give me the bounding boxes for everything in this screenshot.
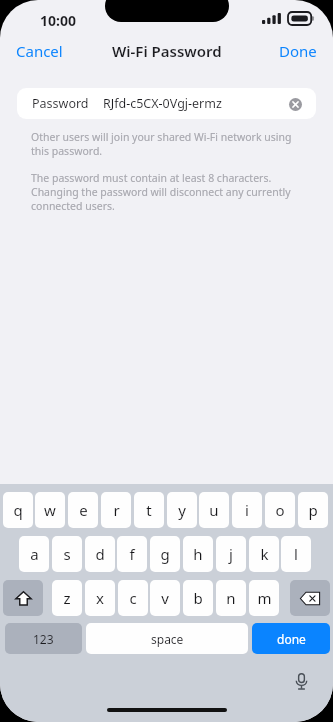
button[interactable]: n xyxy=(216,580,246,616)
staticText: 123 xyxy=(33,631,54,647)
button[interactable]: m xyxy=(249,580,279,616)
button[interactable]: Cancel xyxy=(8,36,71,66)
staticText: p xyxy=(308,500,318,520)
staticText: b xyxy=(193,588,203,608)
staticText: d xyxy=(95,544,105,564)
staticText: z xyxy=(63,588,71,608)
staticText: q xyxy=(13,500,23,520)
staticText: done xyxy=(277,631,306,647)
button[interactable]: a xyxy=(19,536,49,572)
staticText: l xyxy=(294,544,298,564)
staticText: j xyxy=(229,544,233,564)
staticText: s xyxy=(63,544,71,564)
staticText: a xyxy=(30,544,39,564)
button[interactable]: s xyxy=(52,536,82,572)
button[interactable]: Backspace xyxy=(290,580,330,616)
button[interactable]: p xyxy=(298,492,328,528)
button[interactable]: w xyxy=(35,492,65,528)
staticText: w xyxy=(44,500,56,520)
button[interactable]: Password xyxy=(17,88,316,119)
staticText: g xyxy=(160,544,170,564)
staticText: Wi-Fi Password xyxy=(112,41,222,61)
staticText: u xyxy=(209,500,219,520)
button[interactable]: i xyxy=(232,492,262,528)
staticText: c xyxy=(129,588,137,608)
staticText: r xyxy=(113,500,120,520)
staticText: x xyxy=(96,588,104,608)
button[interactable]: e xyxy=(68,492,98,528)
button[interactable]: v xyxy=(150,580,180,616)
button[interactable]: f xyxy=(117,536,147,572)
button[interactable]: Clear text xyxy=(282,91,308,117)
staticText: v xyxy=(161,588,169,608)
staticText: Cancel xyxy=(16,41,63,61)
staticText: The password must contain at least 8 cha… xyxy=(31,171,302,213)
button[interactable]: q xyxy=(3,492,33,528)
staticText: 10:00 xyxy=(40,11,76,30)
button[interactable]: done xyxy=(252,623,330,654)
button[interactable]: space xyxy=(86,623,248,654)
staticText: y xyxy=(178,500,186,520)
button[interactable]: z xyxy=(52,580,82,616)
button[interactable]: Dictation xyxy=(286,666,316,696)
button[interactable]: x xyxy=(85,580,115,616)
staticText: RJfd-c5CX-0Vgj-ermz xyxy=(103,95,222,112)
staticText: f xyxy=(129,544,135,564)
staticText: space xyxy=(151,631,184,647)
staticText: t xyxy=(146,500,152,520)
staticText: e xyxy=(79,500,88,520)
button[interactable]: j xyxy=(216,536,246,572)
button[interactable]: o xyxy=(265,492,295,528)
staticText: k xyxy=(260,544,269,564)
staticText: o xyxy=(275,500,285,520)
staticText: Other users will join your shared Wi-Fi … xyxy=(31,130,302,158)
staticText: i xyxy=(245,500,249,520)
button[interactable]: b xyxy=(183,580,213,616)
button[interactable]: r xyxy=(101,492,131,528)
button[interactable]: c xyxy=(118,580,148,616)
staticText: Done xyxy=(279,41,317,61)
button[interactable]: k xyxy=(249,536,279,572)
button[interactable]: Shift xyxy=(3,580,43,616)
button[interactable]: Done xyxy=(271,36,325,66)
button[interactable]: h xyxy=(183,536,213,572)
button[interactable]: u xyxy=(199,492,229,528)
staticText: Password xyxy=(32,95,89,112)
button[interactable]: 123 xyxy=(5,623,82,654)
staticText: m xyxy=(257,588,272,608)
button[interactable]: t xyxy=(134,492,164,528)
staticText: h xyxy=(193,544,203,564)
button[interactable]: l xyxy=(281,536,311,572)
button[interactable]: g xyxy=(150,536,180,572)
staticText: n xyxy=(226,588,236,608)
button[interactable]: d xyxy=(85,536,115,572)
button[interactable]: y xyxy=(167,492,197,528)
